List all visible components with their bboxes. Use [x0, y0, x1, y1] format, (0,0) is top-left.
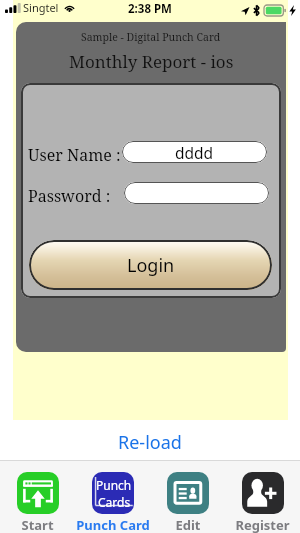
other: Punch Cards [92, 472, 134, 514]
staticText: Re-load [118, 430, 182, 454]
staticText: Cards [98, 494, 131, 510]
button[interactable]: Edit [150, 461, 225, 533]
other: Register [242, 472, 284, 514]
staticText: Edit [175, 516, 201, 533]
staticText: dddd [175, 142, 214, 163]
staticText: Monthly Report - ios [69, 50, 234, 73]
staticText: 2:38 PM [128, 1, 172, 17]
staticText: Login [127, 253, 175, 278]
other: Start [17, 472, 59, 514]
staticText: Sample - Digital Punch Card [81, 30, 221, 44]
staticText: Start [21, 516, 54, 533]
button[interactable]: Start [0, 461, 75, 533]
button[interactable]: Login [29, 240, 272, 290]
staticText: Punch Card [76, 516, 150, 533]
staticText: User Name : [28, 144, 121, 161]
staticText: Password : [28, 185, 111, 202]
staticText: Singtel [23, 0, 59, 15]
staticText: Register [235, 516, 290, 533]
button[interactable]: Punch Cards [75, 461, 150, 533]
staticText: Punch [96, 477, 132, 493]
button[interactable]: Re-load [0, 430, 300, 454]
other: Edit [167, 472, 209, 514]
button[interactable]: Register [225, 461, 300, 533]
